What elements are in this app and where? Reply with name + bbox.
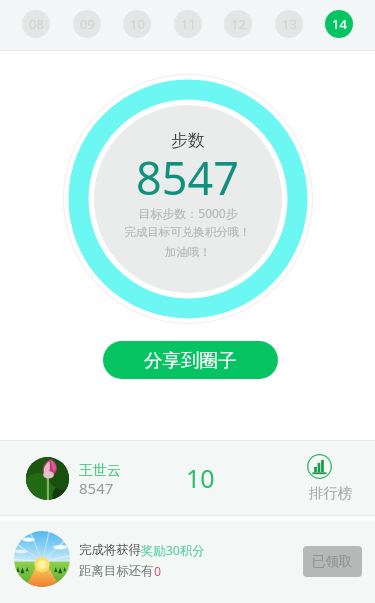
staticText: 完成目标可兑换积分哦！	[124, 225, 251, 239]
staticText: 13	[282, 15, 297, 33]
button[interactable]: 14	[325, 10, 353, 38]
button[interactable]: 09	[73, 10, 101, 38]
button[interactable]: 12	[224, 10, 252, 38]
staticText: 11	[181, 15, 196, 33]
staticText: 14	[332, 15, 347, 33]
staticText: 09	[80, 15, 95, 33]
staticText: 王世云	[79, 462, 121, 480]
staticText: 步数	[171, 130, 205, 151]
staticText: 10	[130, 15, 145, 33]
button[interactable]: 已领取	[303, 546, 362, 577]
button[interactable]: 分享到圈子	[103, 341, 278, 379]
staticText: 加油哦！	[165, 245, 211, 259]
staticText: 排行榜	[309, 484, 352, 502]
staticText: 12	[231, 15, 246, 33]
button[interactable]: 11	[174, 10, 202, 38]
staticText: 距离目标还有	[79, 563, 154, 579]
staticText: 已领取	[312, 553, 353, 570]
staticText: 目标步数：5000步	[138, 205, 238, 221]
button[interactable]: 10	[123, 10, 151, 38]
button[interactable]: 13	[275, 10, 303, 38]
button[interactable]: 王世云	[0, 441, 375, 515]
staticText: 8547	[136, 147, 239, 207]
staticText: 10	[186, 461, 215, 495]
staticText: 完成将获得	[79, 542, 141, 558]
button[interactable]: 排行榜 Leaderboard	[296, 449, 348, 511]
staticText: 08	[29, 15, 44, 33]
staticText: 奖励30积分	[141, 542, 205, 559]
staticText: 0	[154, 563, 162, 580]
button[interactable]: 08	[22, 10, 50, 38]
staticText: 分享到圈子	[144, 349, 237, 372]
button[interactable]: 完成将获得	[0, 521, 375, 603]
staticText: 8547	[79, 478, 114, 498]
